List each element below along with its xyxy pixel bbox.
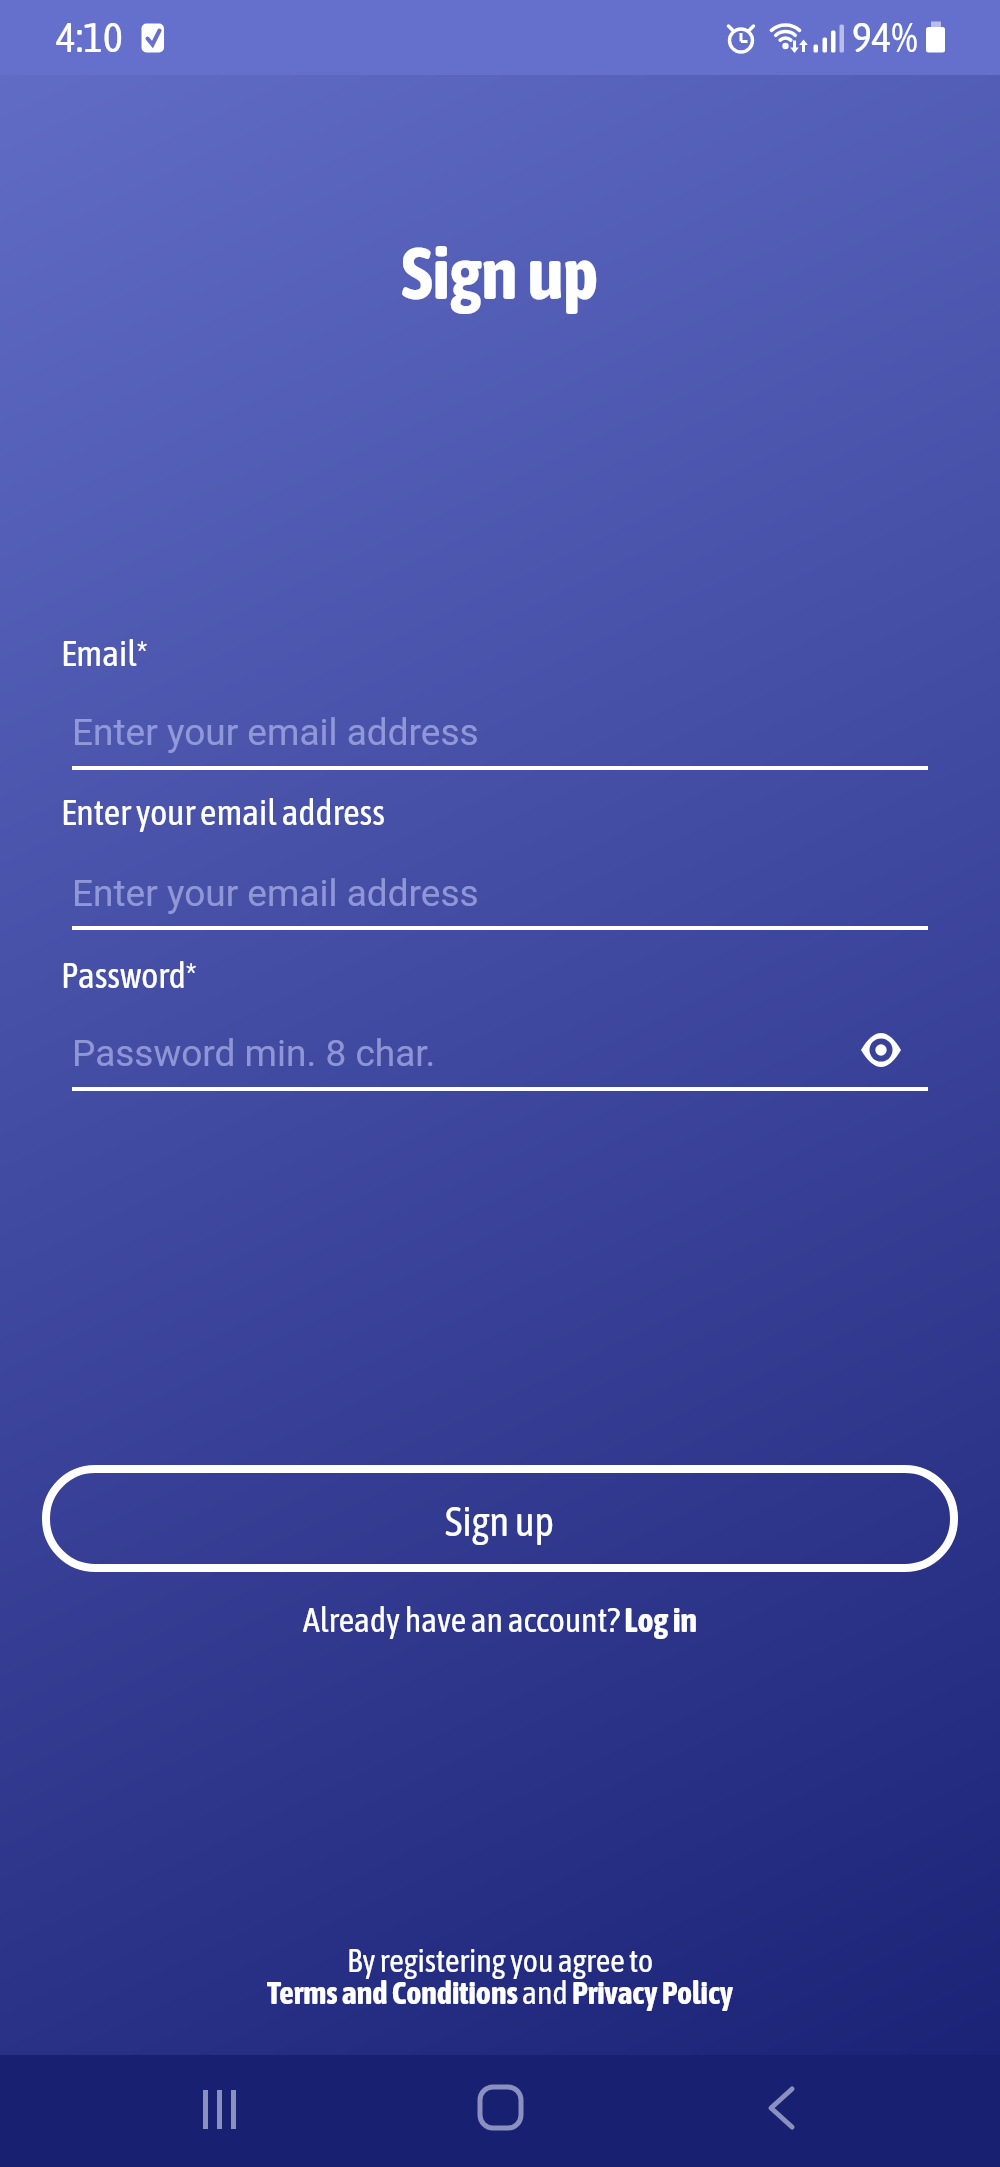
button[interactable] <box>450 2060 550 2160</box>
button[interactable]: Sign up <box>42 1465 958 1572</box>
staticText: Enter your email address <box>61 791 386 832</box>
button[interactable] <box>731 2060 831 2160</box>
staticText: By registering you agree to <box>0 1942 1000 1979</box>
button[interactable]: Terms and Conditions and Privacy Policy <box>0 1974 1000 2011</box>
staticText: Enter your email address <box>72 711 479 754</box>
staticText: Password min. 8 char. <box>72 1032 436 1075</box>
button[interactable] <box>858 1030 904 1070</box>
staticText: Sign up <box>445 1498 555 1545</box>
button[interactable] <box>172 2060 272 2160</box>
staticText: Enter your email address <box>72 872 479 915</box>
staticText: Email* <box>61 632 148 673</box>
staticText: Password* <box>61 954 197 995</box>
button[interactable]: Already have an account? Log in <box>0 1600 1000 1639</box>
staticText: 94% <box>852 13 918 61</box>
staticText: 4:10 <box>56 13 123 61</box>
staticText: Sign up <box>0 230 1000 315</box>
